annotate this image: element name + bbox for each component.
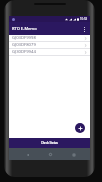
button[interactable]: Recents bbox=[69, 150, 78, 159]
staticText: RTO E-Memo bbox=[12, 26, 37, 31]
staticText: GJ30DF9944 bbox=[12, 49, 36, 55]
staticText: Check Status bbox=[41, 141, 58, 145]
button[interactable]: Check Status bbox=[9, 138, 90, 148]
button[interactable]: Add bbox=[75, 123, 85, 133]
staticText: GJ03DF9998 bbox=[12, 35, 36, 41]
button[interactable]: Back bbox=[23, 150, 32, 159]
button[interactable]: Home bbox=[46, 150, 55, 159]
button[interactable]: GJ03DF9998 bbox=[9, 35, 90, 42]
button[interactable]: GJ30DF9944 bbox=[9, 49, 90, 56]
button[interactable]: GJ03DF8079 bbox=[9, 42, 90, 49]
button[interactable]: More options bbox=[80, 25, 88, 33]
staticText: 10:53 bbox=[80, 17, 88, 21]
staticText: GJ03DF8079 bbox=[12, 42, 36, 48]
